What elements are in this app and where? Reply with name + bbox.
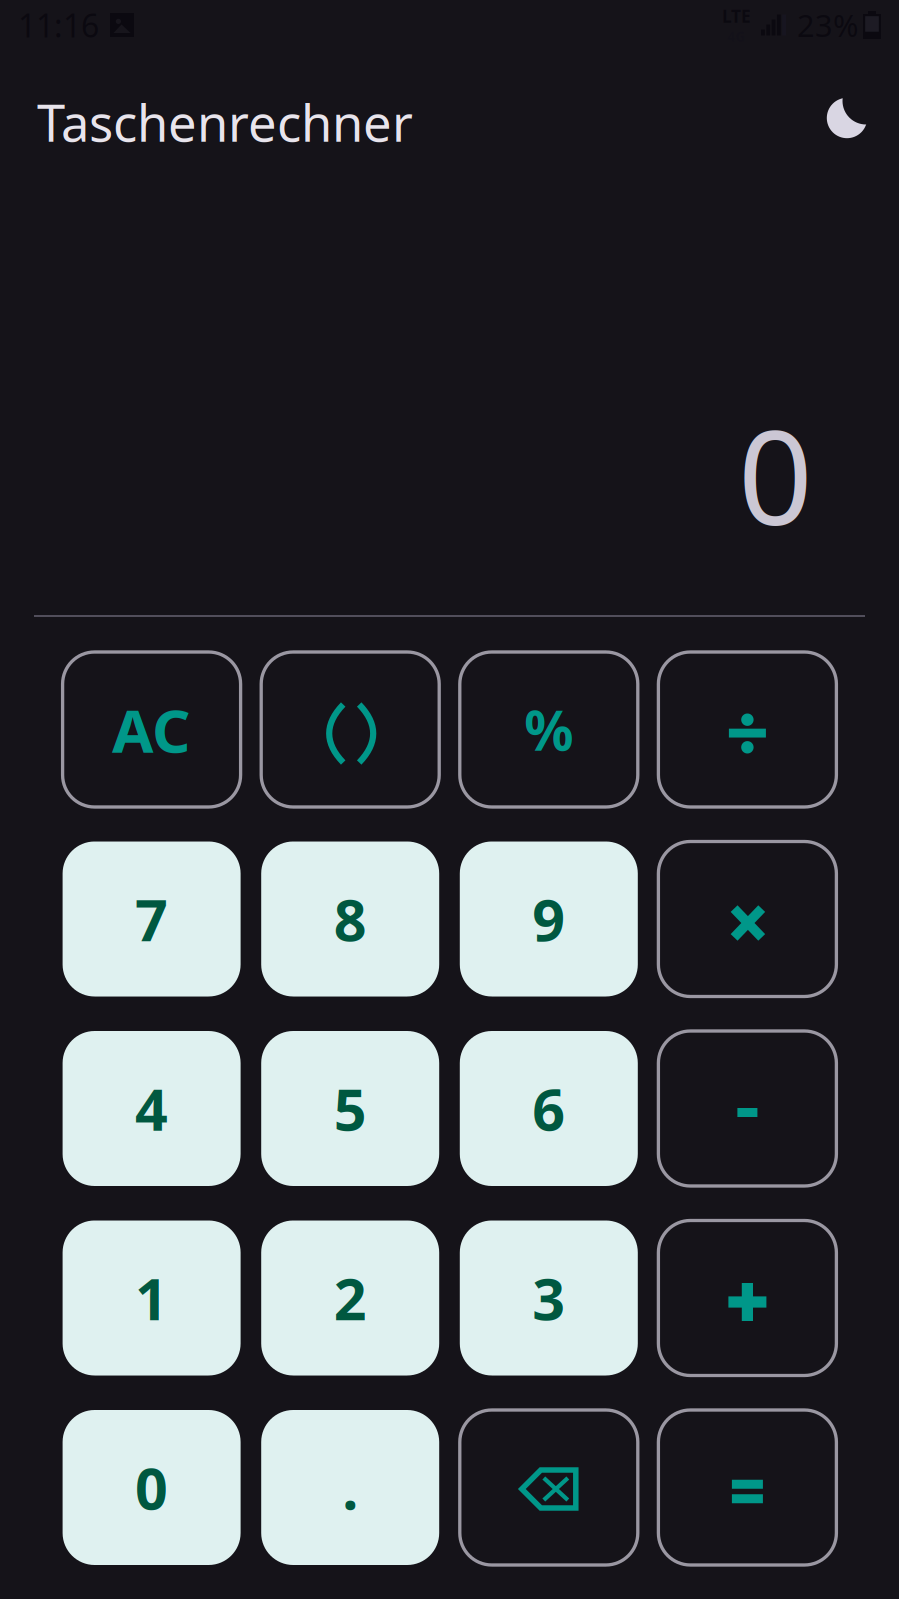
staticText: AC xyxy=(112,690,191,769)
staticText: 6 xyxy=(532,1070,565,1146)
button[interactable]: Dividieren xyxy=(658,652,836,807)
staticText: % xyxy=(524,693,573,766)
button[interactable]: 6 xyxy=(460,1031,638,1186)
button[interactable]: Gleich xyxy=(658,1410,836,1565)
staticText: 0 xyxy=(738,387,813,561)
staticText: 0 xyxy=(135,1449,168,1525)
button[interactable]: AC xyxy=(63,652,241,807)
button[interactable]: 8 xyxy=(261,841,439,996)
staticText: 5 xyxy=(334,1070,367,1146)
staticText: 7 xyxy=(135,881,168,957)
button[interactable]: 5 xyxy=(261,1031,439,1186)
staticText: LTE xyxy=(722,5,751,28)
button[interactable]: Minus xyxy=(658,1031,836,1186)
button[interactable]: 1 xyxy=(63,1220,241,1375)
button[interactable]: 9 xyxy=(460,841,638,996)
button[interactable]: Dunkelmodus xyxy=(826,97,870,147)
button[interactable]: 7 xyxy=(63,841,241,996)
button[interactable]: 4 xyxy=(63,1031,241,1186)
staticText: . xyxy=(342,1449,358,1525)
staticText: 9 xyxy=(532,881,565,957)
button[interactable]: 2 xyxy=(261,1220,439,1375)
staticText: 4 xyxy=(135,1070,168,1146)
staticText: 23% xyxy=(797,5,858,45)
button[interactable]: Löschen xyxy=(460,1410,638,1565)
button[interactable]: 3 xyxy=(460,1220,638,1375)
staticText: Taschenrechner xyxy=(37,88,413,156)
button[interactable]: % xyxy=(460,652,638,807)
staticText: 2 xyxy=(334,1260,367,1336)
staticText: 8 xyxy=(334,881,367,957)
button[interactable]: . xyxy=(261,1410,439,1565)
button[interactable]: 0 xyxy=(63,1410,241,1565)
button[interactable]: Plus xyxy=(658,1220,836,1375)
staticText: 1 xyxy=(135,1260,168,1336)
staticText: 3 xyxy=(532,1260,565,1336)
button[interactable]: Klammern xyxy=(261,652,439,807)
button[interactable]: Multiplizieren xyxy=(658,841,836,996)
